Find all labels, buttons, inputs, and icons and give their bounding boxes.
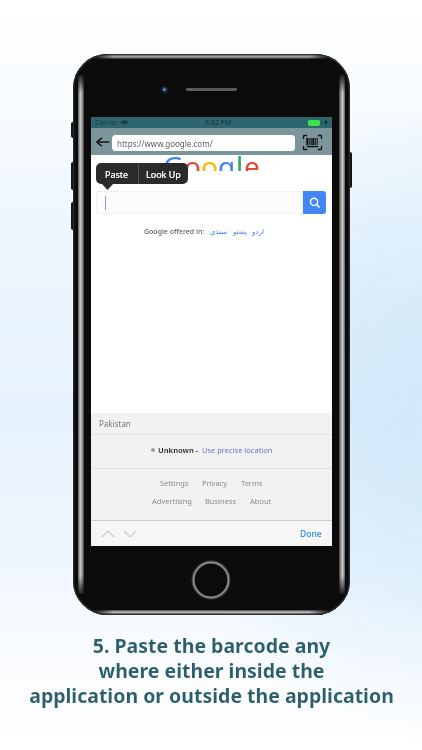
button[interactable]: Terms: [241, 477, 263, 489]
staticText: g: [218, 147, 236, 171]
button[interactable]: [96, 191, 303, 214]
staticText: Advertising: [152, 496, 192, 506]
button[interactable]: Search: [303, 191, 326, 214]
button[interactable]: Look Up: [139, 163, 188, 184]
staticText: Look Up: [146, 168, 181, 180]
staticText: Unknown -: [158, 445, 199, 455]
staticText: اردو: [252, 228, 264, 236]
staticText: Done: [300, 528, 322, 540]
button[interactable]: اردو: [252, 228, 264, 236]
button[interactable]: Previous field: [100, 527, 116, 541]
staticText: e: [244, 147, 260, 171]
button[interactable]: Done: [298, 525, 324, 543]
button[interactable]: Advertising: [152, 495, 192, 507]
staticText: Use precise location: [202, 445, 273, 455]
button[interactable]: Paste: [96, 163, 138, 184]
staticText: Terms: [241, 478, 263, 488]
staticText: Carrier: [95, 118, 118, 128]
button[interactable]: Next field: [122, 527, 138, 541]
staticText: 5. Paste the barcode any where either in…: [29, 632, 394, 708]
button[interactable]: Scan barcode: [301, 133, 323, 151]
staticText: Business: [205, 496, 237, 506]
button[interactable]: Privacy: [202, 477, 228, 489]
button[interactable]: Use precise location: [202, 445, 273, 455]
staticText: 5:52 PM: [205, 118, 232, 128]
staticText: Settings: [160, 478, 189, 488]
staticText: Paste: [105, 168, 129, 180]
staticText: Privacy: [202, 478, 228, 488]
button[interactable]: پښتو: [233, 228, 247, 236]
staticText: https://www.google.com/: [117, 138, 213, 149]
staticText: سنڌي: [210, 228, 228, 236]
staticText: o: [201, 147, 218, 171]
staticText: About: [250, 496, 272, 506]
button[interactable]: https://www.google.com/: [112, 135, 295, 151]
staticText: G: [163, 147, 184, 171]
staticText: Pakistan: [99, 418, 131, 429]
button[interactable]: About: [250, 495, 272, 507]
button[interactable]: سنڌي: [210, 228, 228, 236]
staticText: l: [236, 147, 244, 171]
button[interactable]: Settings: [160, 477, 189, 489]
button[interactable]: Business: [205, 495, 237, 507]
staticText: o: [184, 147, 201, 171]
button[interactable]: Back: [94, 133, 111, 150]
staticText: پښتو: [233, 228, 247, 236]
staticText: Google offered in:: [144, 227, 205, 237]
